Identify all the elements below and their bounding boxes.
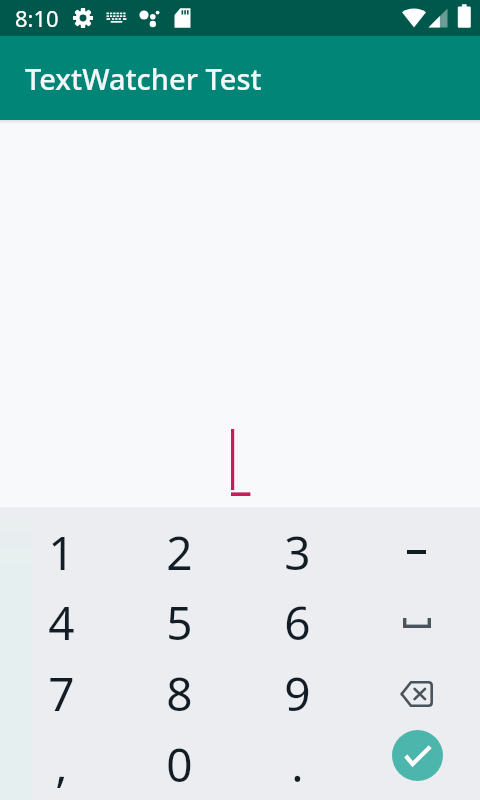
staticText: 1 (48, 521, 75, 584)
button[interactable]: Text input field (231, 429, 250, 496)
staticText: 8:10 (15, 3, 59, 33)
button[interactable]: 8 (120, 658, 238, 729)
button[interactable]: 2 (120, 517, 238, 587)
button[interactable]: Space (357, 587, 476, 658)
button[interactable]: 7 (2, 658, 120, 729)
button[interactable]: 5 (120, 587, 238, 658)
button[interactable]: . (238, 729, 357, 800)
button[interactable]: Done (357, 729, 476, 800)
other: Backspace (400, 681, 433, 707)
staticText: 2 (166, 521, 193, 584)
button[interactable]: Backspace (357, 658, 476, 729)
staticText: 8 (166, 662, 193, 725)
staticText: 6 (284, 591, 311, 654)
staticText: . (291, 733, 304, 796)
button[interactable]: 3 (238, 517, 357, 587)
button[interactable]: Done (392, 730, 443, 781)
button[interactable]: , (2, 729, 120, 800)
staticText: 5 (166, 591, 193, 654)
staticText: 4 (48, 591, 75, 654)
button[interactable]: Minus (357, 517, 476, 587)
staticText: 7 (48, 662, 75, 725)
button[interactable]: 4 (2, 587, 120, 658)
button[interactable]: 1 (2, 517, 120, 587)
staticText: TextWatcher Test (25, 59, 262, 98)
staticText: 3 (284, 521, 311, 584)
button[interactable]: 0 (120, 729, 238, 800)
staticText: , (55, 733, 68, 796)
button[interactable]: 6 (238, 587, 357, 658)
staticText: 9 (284, 662, 311, 725)
other: Space (403, 618, 431, 628)
button[interactable]: 9 (238, 658, 357, 729)
staticText: 0 (166, 733, 193, 796)
